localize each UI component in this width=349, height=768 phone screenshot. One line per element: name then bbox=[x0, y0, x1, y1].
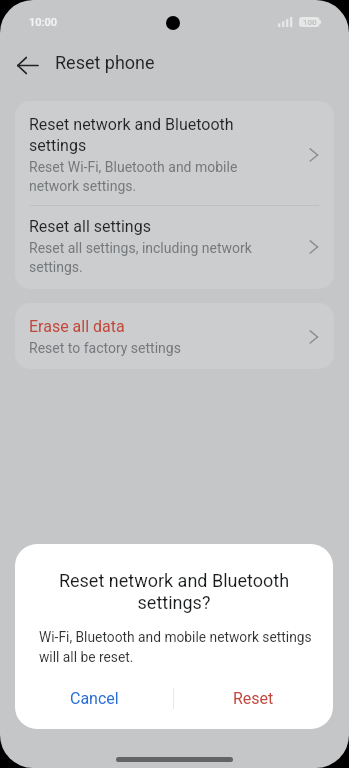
staticText: Erase all data bbox=[29, 317, 125, 336]
button[interactable]: Reset all settings bbox=[15, 206, 334, 289]
staticText: Reset network and Bluetooth settings? bbox=[41, 570, 307, 613]
staticText: Reset phone bbox=[55, 52, 155, 73]
staticText: Wi-Fi, Bluetooth and mobile network sett… bbox=[39, 629, 315, 665]
button[interactable]: Back bbox=[7, 45, 47, 85]
staticText: 100 bbox=[303, 18, 317, 27]
staticText: Reset Wi-Fi, Bluetooth and mobile networ… bbox=[29, 159, 287, 195]
button[interactable]: Cancel bbox=[15, 678, 173, 718]
staticText: Reset all settings bbox=[29, 217, 151, 236]
staticText: Reset network and Bluetooth settings bbox=[29, 115, 287, 155]
button[interactable]: Erase all data bbox=[15, 303, 334, 369]
button[interactable]: Reset network and Bluetooth settings bbox=[15, 101, 334, 205]
staticText: Cancel bbox=[70, 689, 119, 708]
staticText: 10:00 bbox=[29, 16, 57, 29]
button[interactable]: Reset bbox=[174, 678, 333, 718]
staticText: Reset to factory settings bbox=[29, 340, 181, 356]
staticText: Reset all settings, including network se… bbox=[29, 240, 287, 276]
staticText: Reset bbox=[233, 689, 274, 708]
